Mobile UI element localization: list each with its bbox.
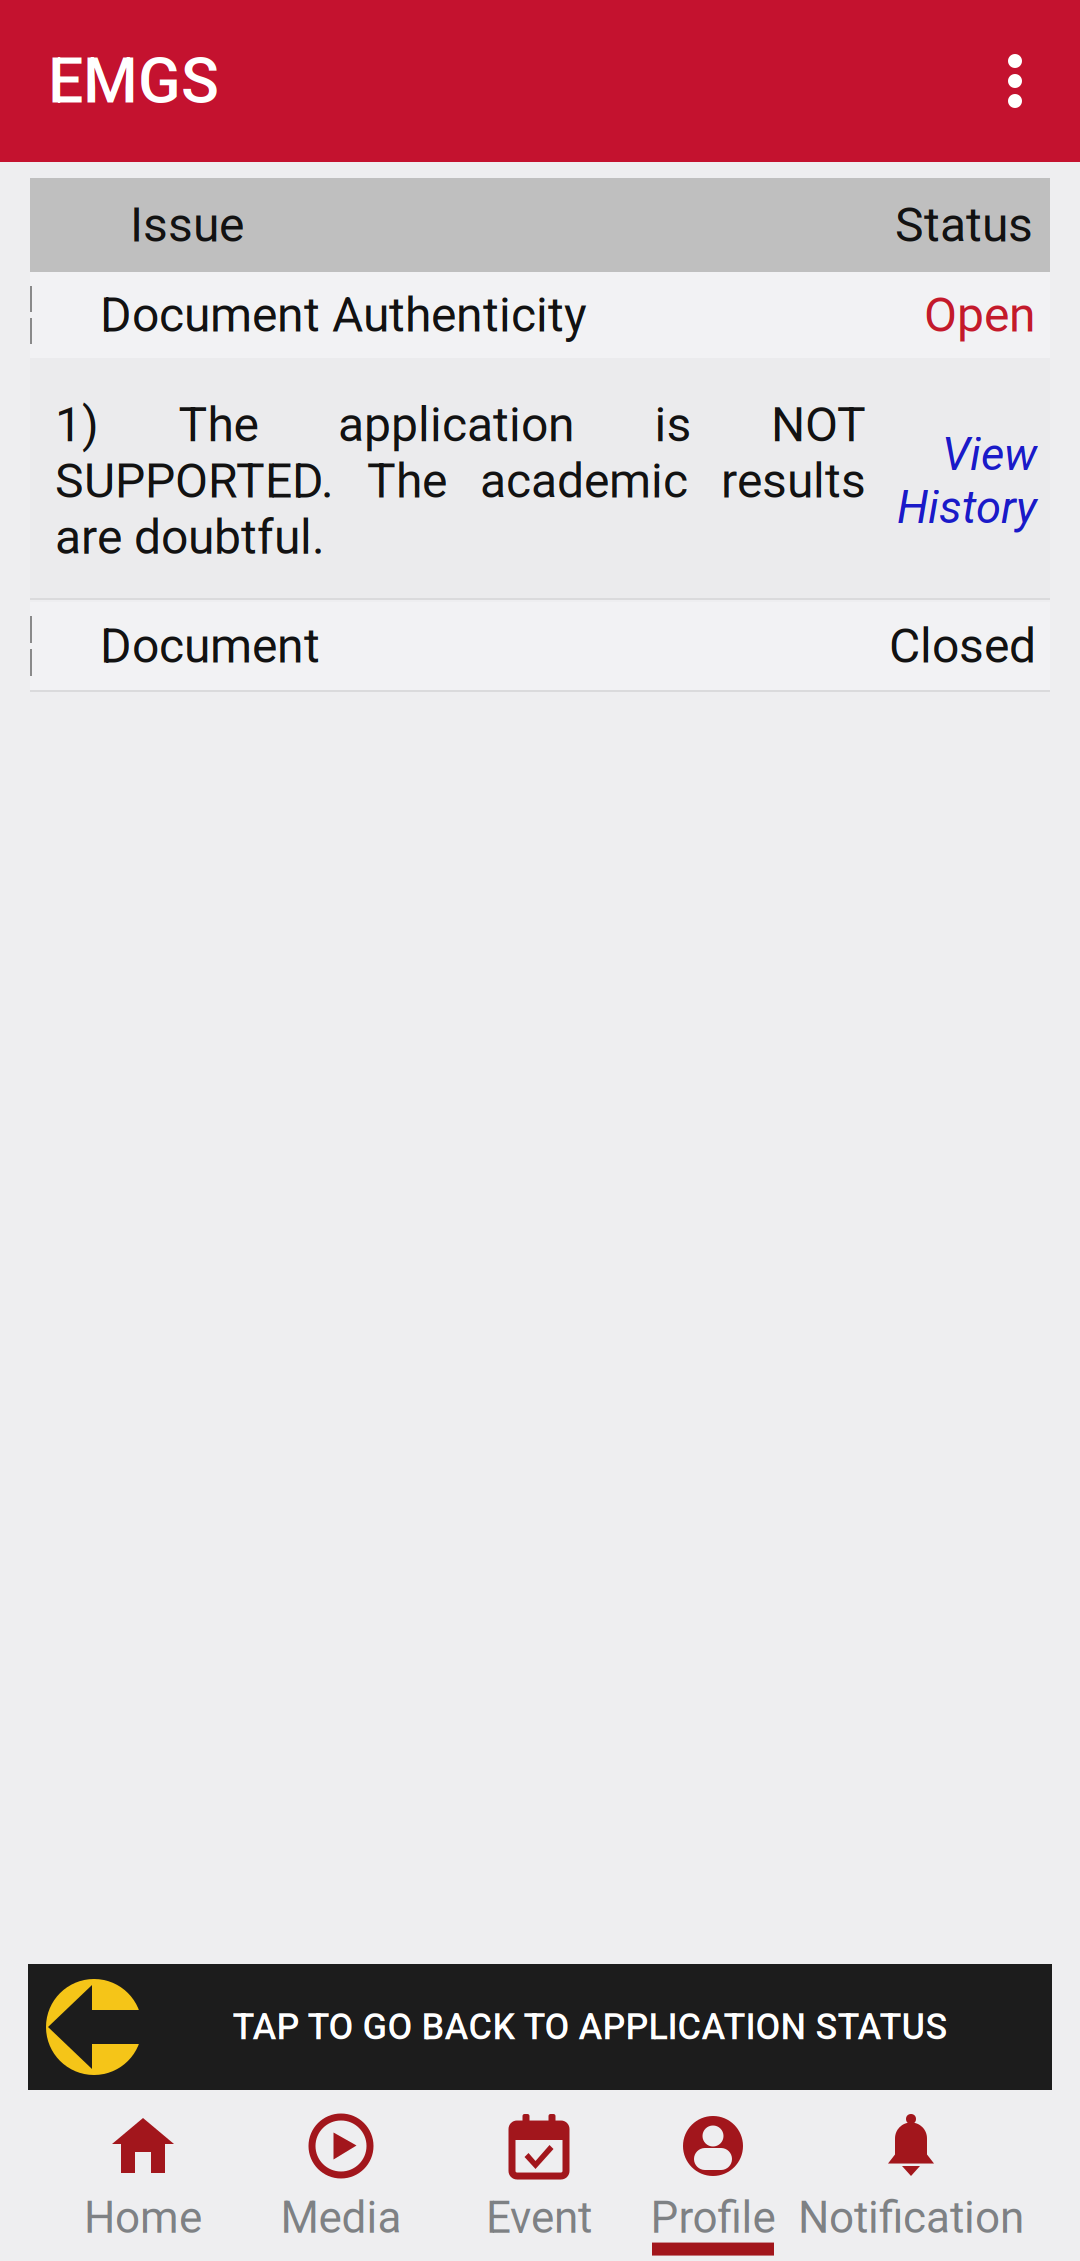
staticText: Issue [130, 197, 244, 253]
staticText: History [897, 481, 1037, 534]
staticText: are doubtful. [55, 509, 325, 565]
staticText: is [654, 397, 691, 453]
staticText: 1) [55, 397, 99, 453]
button[interactable]: Document [30, 602, 1050, 690]
staticText: academic [480, 453, 688, 509]
staticText: Document [100, 618, 320, 674]
staticText: application [338, 397, 575, 453]
staticText: Profile [650, 2192, 775, 2244]
staticText: results [721, 453, 866, 509]
staticText: EMGS [48, 44, 219, 118]
button[interactable]: More options [950, 0, 1080, 162]
button[interactable]: View [891, 388, 1050, 574]
staticText: The [178, 397, 258, 453]
button[interactable]: TAP TO GO BACK TO APPLICATION STATUS [28, 1964, 1052, 2090]
staticText: Document Authenticity [100, 287, 587, 343]
staticText: TAP TO GO BACK TO APPLICATION STATUS [232, 2006, 947, 2048]
staticText: SUPPORTED. [55, 453, 334, 509]
staticText: Open [924, 287, 1036, 343]
staticText: Closed [889, 618, 1036, 674]
button[interactable]: Home [0, 2090, 286, 2261]
button[interactable]: Profile [570, 2090, 856, 2261]
staticText: Event [486, 2192, 592, 2244]
button[interactable]: Event [396, 2090, 682, 2261]
staticText: The [367, 453, 447, 509]
button[interactable]: Notification [768, 2090, 1054, 2261]
button[interactable]: Document Authenticity [30, 272, 1050, 358]
staticText: Status [895, 197, 1033, 253]
staticText: Media [280, 2192, 401, 2244]
button[interactable]: Media [198, 2090, 484, 2261]
staticText: NOT [771, 397, 866, 453]
staticText: View [942, 428, 1037, 481]
staticText: Notification [798, 2192, 1024, 2244]
staticText: Home [84, 2192, 202, 2244]
